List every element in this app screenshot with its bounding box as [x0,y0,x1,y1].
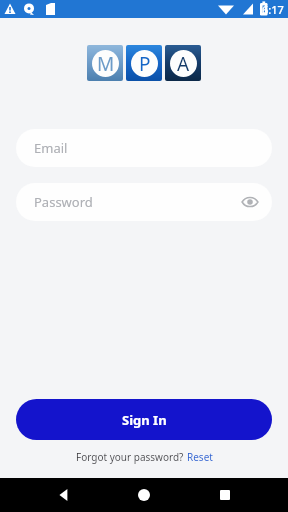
staticText: Sign In [122,411,167,429]
button[interactable]: Password [16,183,272,221]
staticText: 6:17 [262,2,284,17]
button[interactable]: Recents [208,478,242,512]
staticText: Email [34,139,68,157]
staticText: M [97,51,115,77]
button[interactable]: Email [16,129,272,167]
button[interactable]: Reset [187,450,213,464]
staticText: Reset [187,450,213,464]
button[interactable]: Sign In [16,399,272,440]
button[interactable]: Home [127,478,161,512]
staticText: A [177,51,190,77]
button[interactable]: Back [47,478,81,512]
staticText: Password [34,193,93,211]
staticText: P [139,51,151,77]
staticText: Forgot your password? [76,450,184,464]
button[interactable]: Show password [238,190,262,214]
